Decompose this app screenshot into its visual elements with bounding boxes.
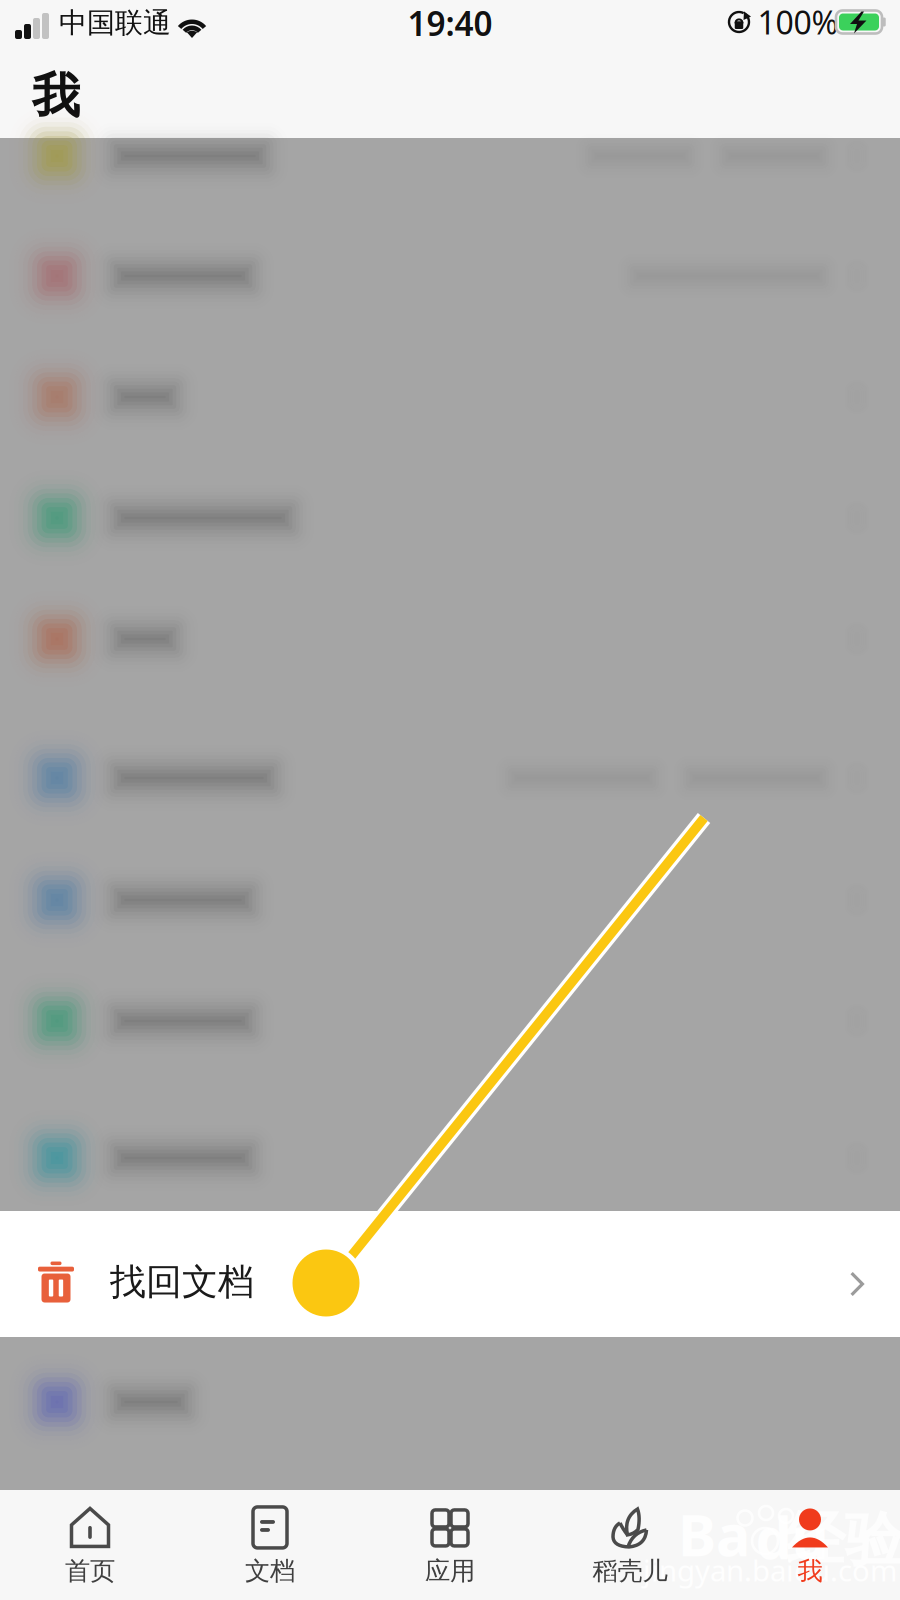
staticText: 中国联通 bbox=[59, 6, 171, 40]
button[interactable]: 我 bbox=[720, 1489, 900, 1600]
staticText: 文档 bbox=[245, 1555, 295, 1586]
staticText: 我 bbox=[32, 66, 80, 125]
staticText: 100% bbox=[757, 1, 838, 43]
button[interactable]: 首页 bbox=[0, 1489, 180, 1600]
staticText: 应用 bbox=[425, 1555, 475, 1586]
staticText: 首页 bbox=[65, 1555, 115, 1586]
staticText: du bbox=[755, 1499, 828, 1575]
staticText: 19:40 bbox=[407, 1, 492, 45]
staticText: 我 bbox=[797, 1555, 822, 1586]
staticText: 经验 bbox=[786, 1504, 900, 1576]
button[interactable]: 稻壳儿 bbox=[540, 1489, 720, 1600]
staticText: jingyan.baidu.com bbox=[643, 1550, 897, 1589]
staticText: Ba bbox=[678, 1496, 750, 1572]
button[interactable]: 文档 bbox=[180, 1489, 360, 1600]
button[interactable]: 应用 bbox=[360, 1489, 540, 1600]
staticText: 找回文档 bbox=[110, 1260, 254, 1304]
staticText: 稻壳儿 bbox=[592, 1555, 667, 1586]
button[interactable]: 找回文档 bbox=[0, 1211, 900, 1337]
